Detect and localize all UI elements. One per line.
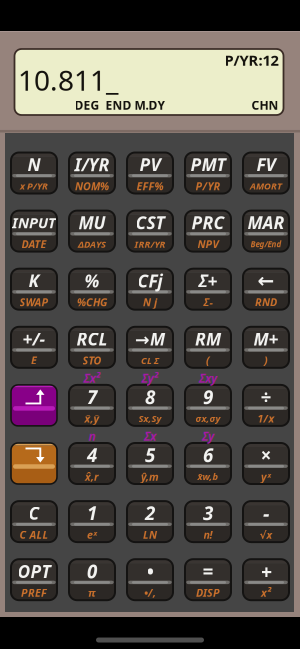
- staticText: P/YR:12: [224, 50, 278, 70]
- button[interactable]: 6: [185, 443, 231, 484]
- staticText: +: [260, 558, 271, 584]
- staticText: σx,σy: [195, 412, 220, 425]
- staticText: 10.811_: [18, 61, 118, 99]
- button[interactable]: PRC: [185, 211, 231, 252]
- staticText: x P/YR: [20, 180, 48, 192]
- staticText: I/YR: [74, 153, 109, 176]
- button[interactable]: M+: [243, 327, 289, 368]
- staticText: √x: [259, 527, 272, 542]
- button[interactable]: +/−: [11, 327, 57, 368]
- button[interactable]: PV: [127, 152, 173, 193]
- staticText: •/,: [144, 586, 156, 600]
- button[interactable]: Σ+: [185, 269, 231, 310]
- button[interactable]: CFj: [127, 269, 173, 310]
- button[interactable]: ×: [243, 443, 289, 484]
- staticText: NPV: [197, 237, 218, 251]
- staticText: STO: [82, 353, 101, 367]
- button[interactable]: =: [185, 559, 231, 600]
- staticText: eˣ: [87, 527, 97, 542]
- staticText: Beg/End: [250, 239, 281, 249]
- button[interactable]: N: [11, 152, 57, 193]
- staticText: 6: [203, 443, 213, 467]
- staticText: FV: [256, 153, 275, 176]
- staticText: 8: [145, 384, 155, 409]
- button[interactable]: 5: [127, 443, 173, 484]
- button[interactable]: RCL: [69, 327, 115, 368]
- button[interactable]: 2: [127, 501, 173, 542]
- staticText: Σx²: [83, 370, 100, 386]
- button[interactable]: 3: [185, 501, 231, 542]
- staticText: Σ+: [198, 269, 217, 292]
- staticText: π: [88, 586, 96, 600]
- staticText: MU: [78, 211, 105, 234]
- staticText: ×: [260, 443, 271, 467]
- button[interactable]: MAR: [243, 211, 289, 252]
- staticText: Sx,Sy: [138, 412, 161, 425]
- button[interactable]: K: [11, 269, 57, 310]
- staticText: CST: [135, 211, 164, 234]
- button[interactable]: Purple shift: [11, 385, 57, 426]
- button[interactable]: %: [69, 269, 115, 310]
- staticText: +/−: [22, 327, 45, 350]
- staticText: =: [202, 559, 213, 584]
- staticText: IRR/YR: [134, 238, 165, 250]
- staticText: DATE: [21, 237, 46, 251]
- staticText: Σx: [144, 428, 156, 444]
- button[interactable]: +: [243, 559, 289, 600]
- button[interactable]: 0: [69, 559, 115, 600]
- staticText: PRC: [191, 211, 224, 234]
- staticText: MAR: [247, 211, 284, 234]
- staticText: 4: [87, 443, 97, 467]
- button[interactable]: Orange shift: [11, 443, 57, 484]
- button[interactable]: OPT: [11, 559, 57, 600]
- button[interactable]: 8: [127, 385, 173, 426]
- button[interactable]: •: [127, 559, 173, 600]
- staticText: x̄,ȳ: [84, 411, 99, 425]
- staticText: EFF%: [136, 179, 163, 193]
- button[interactable]: I/YR: [69, 152, 115, 193]
- staticText: x̂,r: [85, 469, 99, 484]
- staticText: SWAP: [19, 295, 48, 309]
- staticText: n!: [203, 527, 212, 542]
- button[interactable]: FV: [243, 152, 289, 193]
- button[interactable]: 1: [69, 501, 115, 542]
- staticText: x̄w,b: [197, 470, 218, 483]
- button[interactable]: 7: [69, 385, 115, 426]
- button[interactable]: ÷: [243, 385, 289, 426]
- staticText: ŷ,m: [141, 469, 159, 484]
- staticText: 7: [87, 384, 97, 409]
- staticText: N j: [143, 295, 157, 309]
- staticText: Σy²: [141, 370, 158, 386]
- staticText: RCL: [76, 327, 107, 350]
- staticText: 1: [87, 501, 97, 525]
- staticText: 0: [87, 559, 97, 584]
- button[interactable]: 4: [69, 443, 115, 484]
- staticText: n: [88, 428, 95, 444]
- staticText: CHN: [251, 97, 278, 113]
- button[interactable]: MU: [69, 211, 115, 252]
- staticText: x²: [261, 586, 271, 600]
- button[interactable]: PMT: [185, 152, 231, 193]
- button[interactable]: 9: [185, 385, 231, 426]
- button[interactable]: −: [243, 501, 289, 542]
- button[interactable]: CST: [127, 211, 173, 252]
- staticText: AMORT: [250, 180, 282, 192]
- staticText: K: [28, 269, 39, 292]
- staticText: N: [27, 153, 40, 176]
- staticText: %: [84, 269, 99, 292]
- staticText: 5: [145, 443, 155, 467]
- button[interactable]: ←: [243, 269, 289, 310]
- button[interactable]: INPUT: [11, 211, 57, 252]
- staticText: ): [264, 353, 268, 367]
- staticText: DEG END M.DY: [74, 97, 165, 113]
- staticText: 2: [145, 501, 155, 525]
- button[interactable]: RM: [185, 327, 231, 368]
- staticText: DISP: [196, 586, 220, 600]
- button[interactable]: C: [11, 501, 57, 542]
- staticText: Σy: [202, 428, 214, 444]
- staticText: RM: [195, 327, 221, 350]
- staticText: yˣ: [261, 469, 271, 484]
- staticText: 1/x: [257, 411, 274, 425]
- button[interactable]: →M: [127, 327, 173, 368]
- staticText: 9: [203, 384, 213, 409]
